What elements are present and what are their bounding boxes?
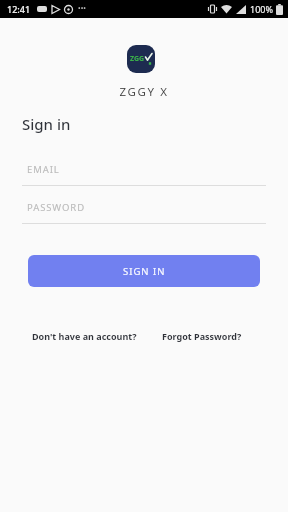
staticText: PASSWORD: [27, 201, 85, 214]
staticText: SIGN IN: [123, 265, 166, 278]
staticText: EMAIL: [27, 163, 60, 176]
staticText: ZGG: [130, 54, 145, 64]
button[interactable]: Forgot Password?: [162, 330, 242, 342]
staticText: ZGGY X: [0, 84, 288, 100]
staticText: 100%: [250, 3, 273, 15]
button[interactable]: Don't have an account?: [32, 330, 137, 342]
staticText: 12:41: [7, 3, 31, 15]
button[interactable]: SIGN IN: [28, 255, 260, 287]
staticText: Sign in: [22, 114, 71, 134]
staticText: •••: [78, 4, 86, 14]
